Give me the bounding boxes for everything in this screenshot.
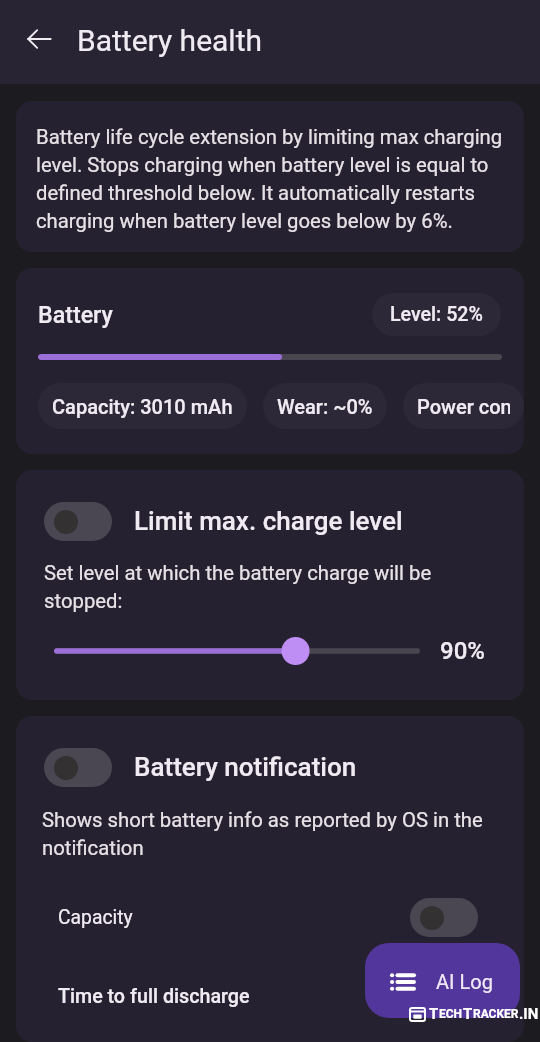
staticText: ECH (439, 1007, 463, 1021)
button[interactable]: Toggle (410, 977, 478, 1016)
staticText: AI Log (436, 970, 493, 993)
staticText: Capacity: 3010 mAh (52, 395, 233, 418)
button[interactable]: Back (15, 18, 63, 66)
button[interactable]: AI Log (365, 943, 520, 1018)
staticText: Capacity (58, 906, 133, 929)
button[interactable]: Charge level slider (54, 634, 420, 668)
button[interactable]: Toggle (16, 495, 524, 547)
button[interactable]: Capacity (16, 892, 524, 942)
button[interactable]: Wear: ~0% (263, 383, 387, 429)
staticText: .IN (519, 1005, 539, 1023)
button[interactable]: Power consumption (403, 383, 524, 429)
staticText: Power consumption (417, 395, 510, 418)
staticText: Set level at which the battery charge wi… (44, 561, 454, 613)
staticText: Battery health (77, 23, 262, 58)
staticText: RACKER (473, 1007, 519, 1021)
button[interactable]: Level: 52% (372, 293, 501, 336)
staticText: Battery life cycle extension by limiting… (36, 125, 506, 233)
button[interactable]: Toggle (44, 502, 112, 541)
button[interactable]: Toggle (44, 748, 112, 787)
staticText: 90% (440, 637, 485, 665)
staticText: Battery notification (134, 752, 357, 782)
staticText: T (463, 1005, 473, 1023)
staticText: T (429, 1005, 439, 1023)
staticText: Time to full discharge (58, 985, 250, 1008)
staticText: Battery (38, 301, 113, 328)
staticText: Shows short battery info as reported by … (42, 808, 484, 860)
button[interactable]: Toggle (16, 741, 524, 793)
staticText: Level: 52% (390, 303, 483, 326)
staticText: Limit max. charge level (134, 506, 403, 536)
button[interactable]: Toggle (410, 898, 478, 937)
button[interactable]: Time to full discharge (16, 971, 524, 1021)
staticText: Wear: ~0% (277, 395, 373, 418)
button[interactable]: Capacity: 3010 mAh (38, 383, 247, 429)
